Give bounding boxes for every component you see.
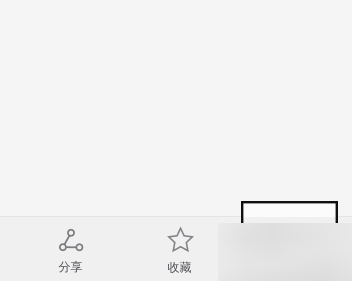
button[interactable]: 收藏 — [125, 217, 234, 281]
staticText: 分享 — [58, 260, 82, 274]
button[interactable]: 评论 — [234, 217, 343, 281]
button[interactable]: 分享 — [16, 217, 125, 281]
staticText: 收藏 — [167, 260, 191, 275]
